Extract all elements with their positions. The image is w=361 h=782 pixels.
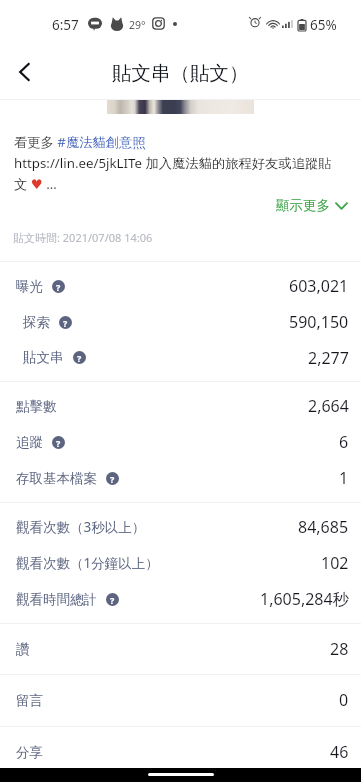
button[interactable]: 貼文串 <box>0 340 361 375</box>
button[interactable]: 探索 <box>0 304 361 340</box>
staticText: 讚 <box>16 641 30 658</box>
button[interactable]: 顯示更多 <box>263 195 361 216</box>
staticText: 觀看時間總計 <box>16 591 97 608</box>
staticText: 6:57 <box>52 16 79 34</box>
button[interactable]: 讚 <box>0 631 361 667</box>
button[interactable]: 追蹤 <box>0 424 361 460</box>
button[interactable]: 存取基本檔案 <box>0 460 361 496</box>
staticText: 曝光 <box>16 278 43 295</box>
staticText: ? <box>110 473 115 485</box>
staticText: 2,664 <box>308 395 349 417</box>
staticText: 1 <box>339 467 349 489</box>
staticText: 存取基本檔案 <box>16 470 97 487</box>
staticText: ? <box>110 594 115 606</box>
staticText: 貼文串（貼文） <box>112 61 249 86</box>
button[interactable]: 觀看次數（1分鐘以上） <box>0 545 361 581</box>
staticText: 0 <box>339 689 349 711</box>
staticText: 46 <box>330 741 349 763</box>
staticText: 留言 <box>16 692 43 709</box>
button[interactable]: Back <box>0 47 50 97</box>
staticText: 6 <box>339 431 349 453</box>
button[interactable]: 點擊數 <box>0 388 361 424</box>
staticText: 看更多 #魔法貓創意照 https://lin.ee/5jkLITe 加入魔法貓… <box>14 133 341 193</box>
staticText: ? <box>63 317 68 329</box>
staticText: 28 <box>330 638 349 660</box>
staticText: ? <box>56 437 61 449</box>
staticText: 貼文串 <box>23 349 64 366</box>
button[interactable]: 分享 <box>0 734 361 770</box>
button[interactable]: 曝光 <box>0 268 361 304</box>
staticText: 貼文時間: 2021/07/08 14:06 <box>13 230 153 245</box>
staticText: 點擊數 <box>16 398 57 415</box>
button[interactable]: 留言 <box>0 682 361 718</box>
staticText: ? <box>56 281 61 293</box>
staticText: 102 <box>321 552 349 574</box>
staticText: 2,277 <box>308 347 349 369</box>
staticText: 顯示更多 <box>276 197 330 214</box>
staticText: ? <box>77 352 82 364</box>
staticText: 29° <box>129 18 146 32</box>
staticText: 分享 <box>16 744 43 761</box>
staticText: 追蹤 <box>16 434 43 451</box>
staticText: 65% <box>310 16 337 34</box>
staticText: 603,021 <box>289 275 349 297</box>
button[interactable]: 觀看次數（3秒以上） <box>0 509 361 545</box>
staticText: 觀看次數（1分鐘以上） <box>16 554 159 572</box>
staticText: 84,685 <box>298 516 349 538</box>
staticText: 1,605,284秒 <box>260 588 349 610</box>
staticText: 觀看次數（3秒以上） <box>16 518 146 536</box>
staticText: 590,150 <box>289 311 349 333</box>
staticText: 探索 <box>23 314 50 331</box>
button[interactable]: 觀看時間總計 <box>0 581 361 617</box>
